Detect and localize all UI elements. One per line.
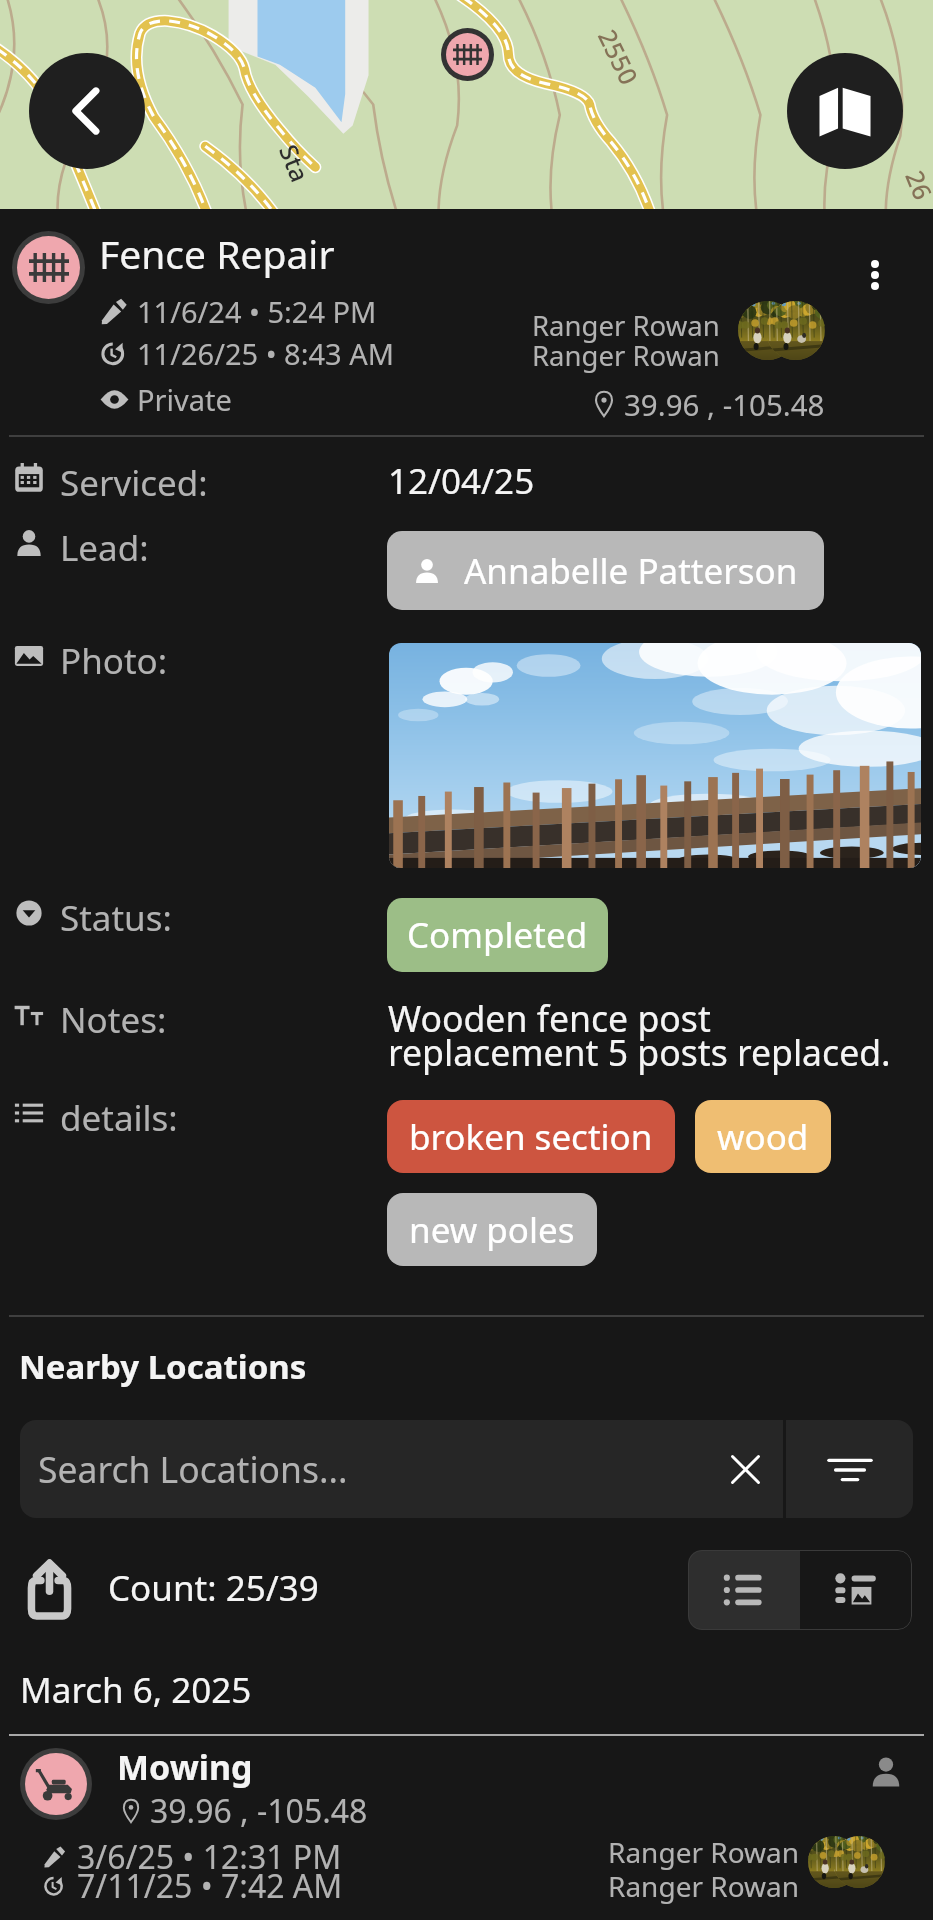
button[interactable]: Annabelle Patterson (387, 531, 824, 610)
staticText: Count: 25/39 (108, 1564, 319, 1612)
staticText: 39.96 , -105.48 (624, 384, 825, 424)
button[interactable]: Photo (389, 643, 921, 868)
staticText: Wooden fence post replacement 5 posts re… (388, 994, 891, 1076)
button[interactable]: broken section (387, 1100, 675, 1173)
staticText: Nearby Locations (19, 1344, 307, 1389)
staticText: Fence Repair (99, 227, 335, 280)
button[interactable]: Fence Repair marker (446, 33, 489, 76)
staticText: 11/6/24 • 5:24 PM (137, 292, 377, 331)
staticText: 3/6/25 • 12:31 PM (77, 1835, 342, 1879)
staticText: details: (60, 1094, 178, 1142)
staticText: 2550 (591, 23, 647, 90)
staticText: 7/11/25 • 7:42 AM (77, 1864, 343, 1908)
staticText: wood (717, 1113, 809, 1161)
button[interactable]: Completed (387, 898, 608, 972)
staticText: Lead: (60, 524, 149, 572)
staticText: Mowing (117, 1744, 253, 1790)
button[interactable]: Mowing (0, 1745, 933, 1920)
button[interactable]: Map layers (787, 53, 903, 169)
button[interactable]: Filter (786, 1420, 913, 1518)
staticText: Photo: (60, 637, 168, 685)
staticText: broken section (409, 1113, 653, 1161)
button[interactable]: Search Locations... (20, 1420, 783, 1518)
staticText: new poles (409, 1206, 575, 1254)
staticText: Status: (60, 894, 172, 942)
button[interactable]: new poles (387, 1193, 597, 1266)
button[interactable]: More options (843, 243, 907, 307)
button[interactable]: List view (688, 1550, 800, 1630)
button[interactable]: Back (29, 53, 145, 169)
button[interactable]: Share (13, 1548, 85, 1628)
button[interactable]: wood (695, 1100, 831, 1173)
staticText: Completed (407, 911, 588, 959)
staticText: Ranger Rowan Ranger Rowan (608, 1833, 800, 1905)
staticText: 11/26/25 • 8:43 AM (137, 334, 394, 373)
staticText: Sta (272, 139, 318, 187)
staticText: Private (137, 380, 232, 419)
staticText: Annabelle Patterson (464, 547, 798, 595)
staticText: Serviced: (60, 459, 208, 507)
staticText: Notes: (60, 996, 167, 1044)
staticText: 39.96 , -105.48 (150, 1789, 368, 1833)
button[interactable]: Clear (717, 1441, 773, 1497)
staticText: 26 (898, 165, 933, 205)
staticText: Ranger Rowan Ranger Rowan (532, 307, 720, 374)
staticText: 12/04/25 (388, 457, 535, 505)
button[interactable]: Card view (800, 1550, 912, 1630)
staticText: March 6, 2025 (20, 1666, 252, 1714)
staticText: Search Locations... (38, 1445, 717, 1493)
